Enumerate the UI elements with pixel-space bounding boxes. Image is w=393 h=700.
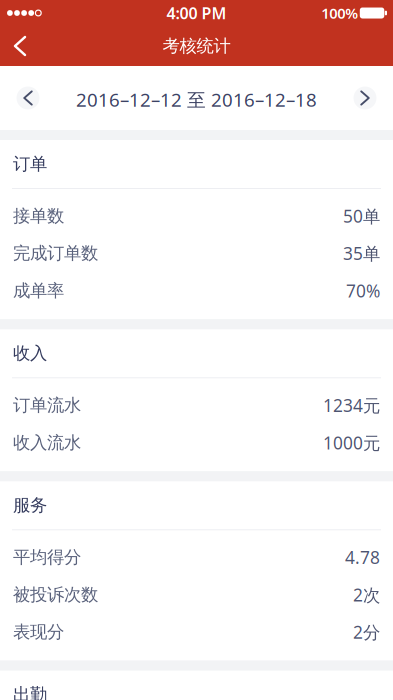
staticText: 平均得分 [13, 547, 81, 568]
staticText: 订单流水 [13, 395, 81, 416]
staticText: 100% [321, 3, 358, 23]
staticText: 完成订单数 [13, 243, 98, 264]
staticText: 服务 [13, 495, 47, 516]
staticText: 表现分 [13, 621, 64, 643]
staticText: 50单 [343, 204, 380, 227]
staticText: 4:00 PM [166, 2, 226, 24]
staticText: 70% [346, 279, 380, 302]
staticText: 成单率 [13, 280, 64, 301]
staticText: 出勤 [13, 684, 47, 700]
staticText: 2016–12–12 至 2016–12–18 [76, 87, 317, 112]
button[interactable]: Next week [343, 76, 387, 120]
staticText: 收入 [13, 343, 47, 364]
staticText: 收入流水 [13, 432, 81, 453]
staticText: 被投诉次数 [13, 584, 98, 605]
staticText: 考核统计 [162, 35, 230, 57]
staticText: 2分 [353, 620, 380, 643]
staticText: 1234元 [323, 394, 380, 417]
button[interactable]: Previous week [6, 76, 50, 120]
staticText: 1000元 [323, 431, 380, 454]
button[interactable]: Back [0, 26, 39, 66]
staticText: 订单 [13, 153, 47, 175]
staticText: 接单数 [13, 205, 64, 227]
staticText: 2次 [353, 583, 380, 606]
staticText: 35单 [343, 242, 380, 265]
staticText: 4.78 [345, 546, 380, 569]
